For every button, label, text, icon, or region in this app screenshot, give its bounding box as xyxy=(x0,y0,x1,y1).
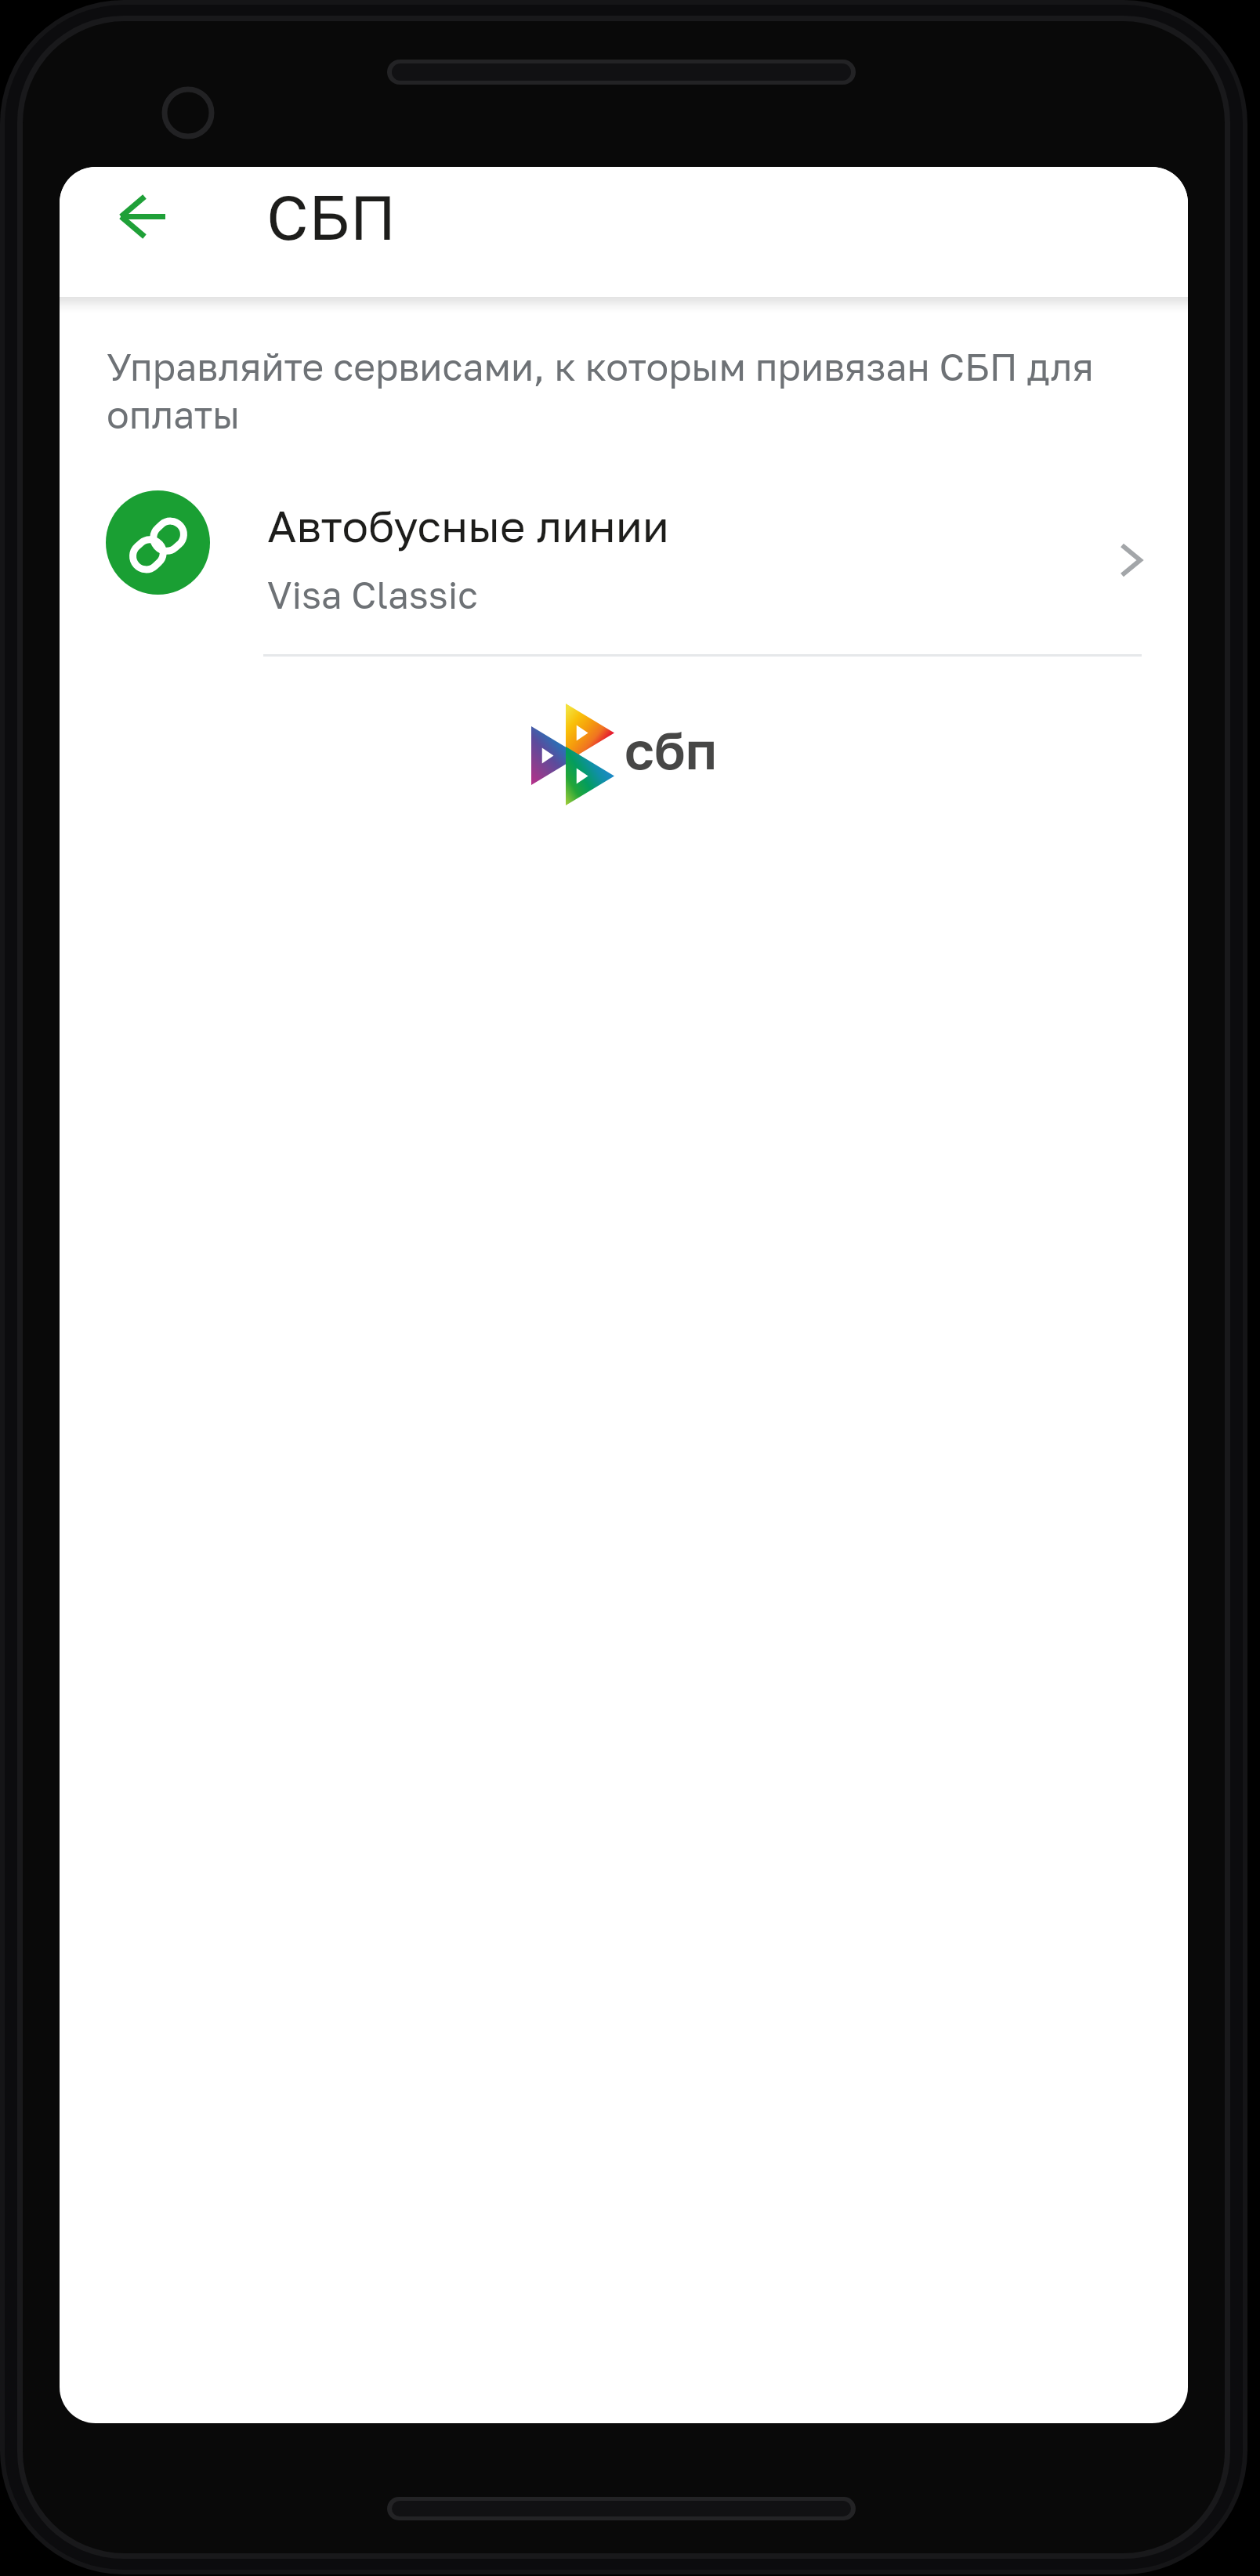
staticText: Visa Classic xyxy=(267,573,478,617)
button[interactable]: Автобусные линии xyxy=(60,466,1188,646)
button[interactable]: Back xyxy=(105,170,204,269)
staticText: Управляйте сервисами, к которым привязан… xyxy=(107,344,1149,437)
staticText: Автобусные линии xyxy=(267,499,669,552)
staticText: сбп xyxy=(625,718,717,780)
staticText: СБП xyxy=(266,179,396,254)
